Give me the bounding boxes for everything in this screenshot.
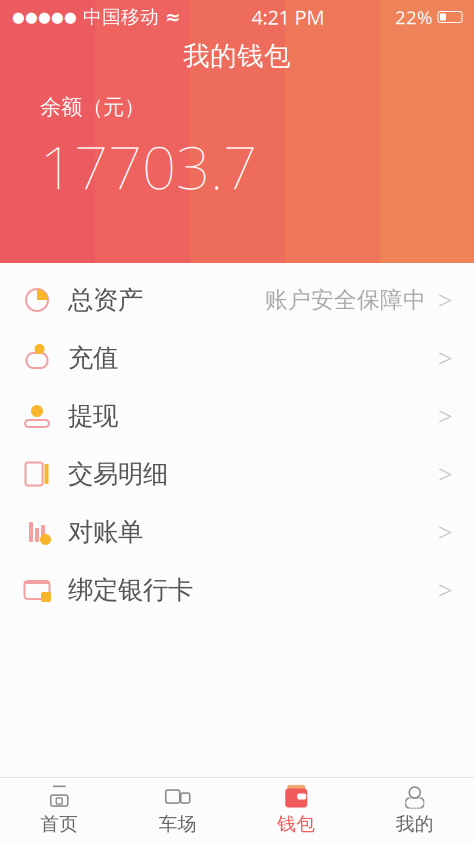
staticText: 充值	[68, 342, 118, 373]
button[interactable]: 钱包	[237, 777, 355, 842]
staticText: 22%	[395, 5, 433, 29]
staticText: ●●●●●	[12, 9, 77, 25]
button[interactable]: 绑定银行卡	[0, 561, 474, 619]
staticText: 首页	[40, 812, 78, 835]
staticText: >	[438, 515, 452, 549]
staticText: 车场	[159, 812, 197, 835]
button[interactable]: 我的	[355, 777, 474, 842]
staticText: 17703.7	[40, 126, 257, 206]
button[interactable]: 车场	[118, 777, 237, 842]
staticText: 中国移动	[77, 5, 165, 28]
staticText: 钱包	[277, 812, 315, 835]
button[interactable]: 首页	[0, 777, 118, 842]
button[interactable]: 充值	[0, 329, 474, 387]
staticText: 绑定银行卡	[68, 574, 193, 605]
staticText: >	[438, 457, 452, 491]
staticText: >	[438, 341, 452, 375]
button[interactable]: 交易明细	[0, 445, 474, 503]
staticText: >	[438, 573, 452, 607]
staticText: 账户安全保障中	[265, 286, 426, 314]
button[interactable]: 总资产	[0, 271, 474, 329]
staticText: 提现	[68, 400, 118, 431]
staticText: 总资产	[68, 284, 143, 315]
staticText: 4:21 PM	[251, 4, 324, 30]
staticText: ≈	[165, 6, 181, 28]
staticText: 对账单	[68, 516, 143, 547]
staticText: 我的钱包	[183, 40, 291, 72]
button[interactable]: 对账单	[0, 503, 474, 561]
staticText: 余额（元）	[40, 94, 145, 120]
button[interactable]: 提现	[0, 387, 474, 445]
staticText: >	[438, 399, 452, 433]
staticText: 我的	[396, 812, 434, 835]
staticText: 交易明细	[68, 458, 168, 489]
staticText: >	[438, 283, 452, 317]
